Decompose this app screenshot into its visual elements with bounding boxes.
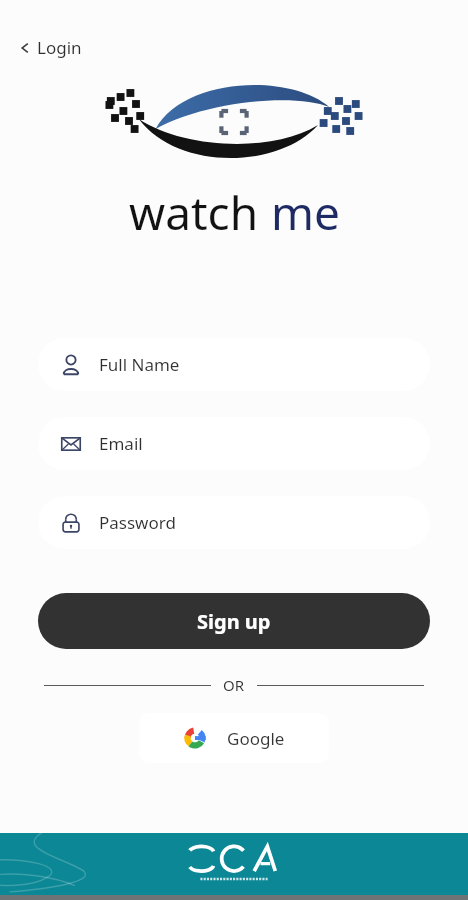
button[interactable]: Login: [14, 32, 88, 63]
staticText: Password: [99, 511, 176, 534]
staticText: watch: [129, 181, 271, 244]
button[interactable]: Password: [38, 496, 430, 549]
staticText: Google: [227, 727, 285, 750]
button[interactable]: Full Name: [38, 338, 430, 391]
staticText: me: [271, 181, 340, 244]
staticText: Full Name: [99, 353, 180, 376]
button[interactable]: Sign up: [38, 593, 430, 649]
button[interactable]: Email: [38, 417, 430, 470]
staticText: Email: [99, 432, 143, 455]
button[interactable]: Google: [139, 713, 329, 763]
staticText: Sign up: [197, 608, 271, 635]
staticText: OR: [223, 675, 245, 695]
staticText: Login: [37, 36, 82, 59]
